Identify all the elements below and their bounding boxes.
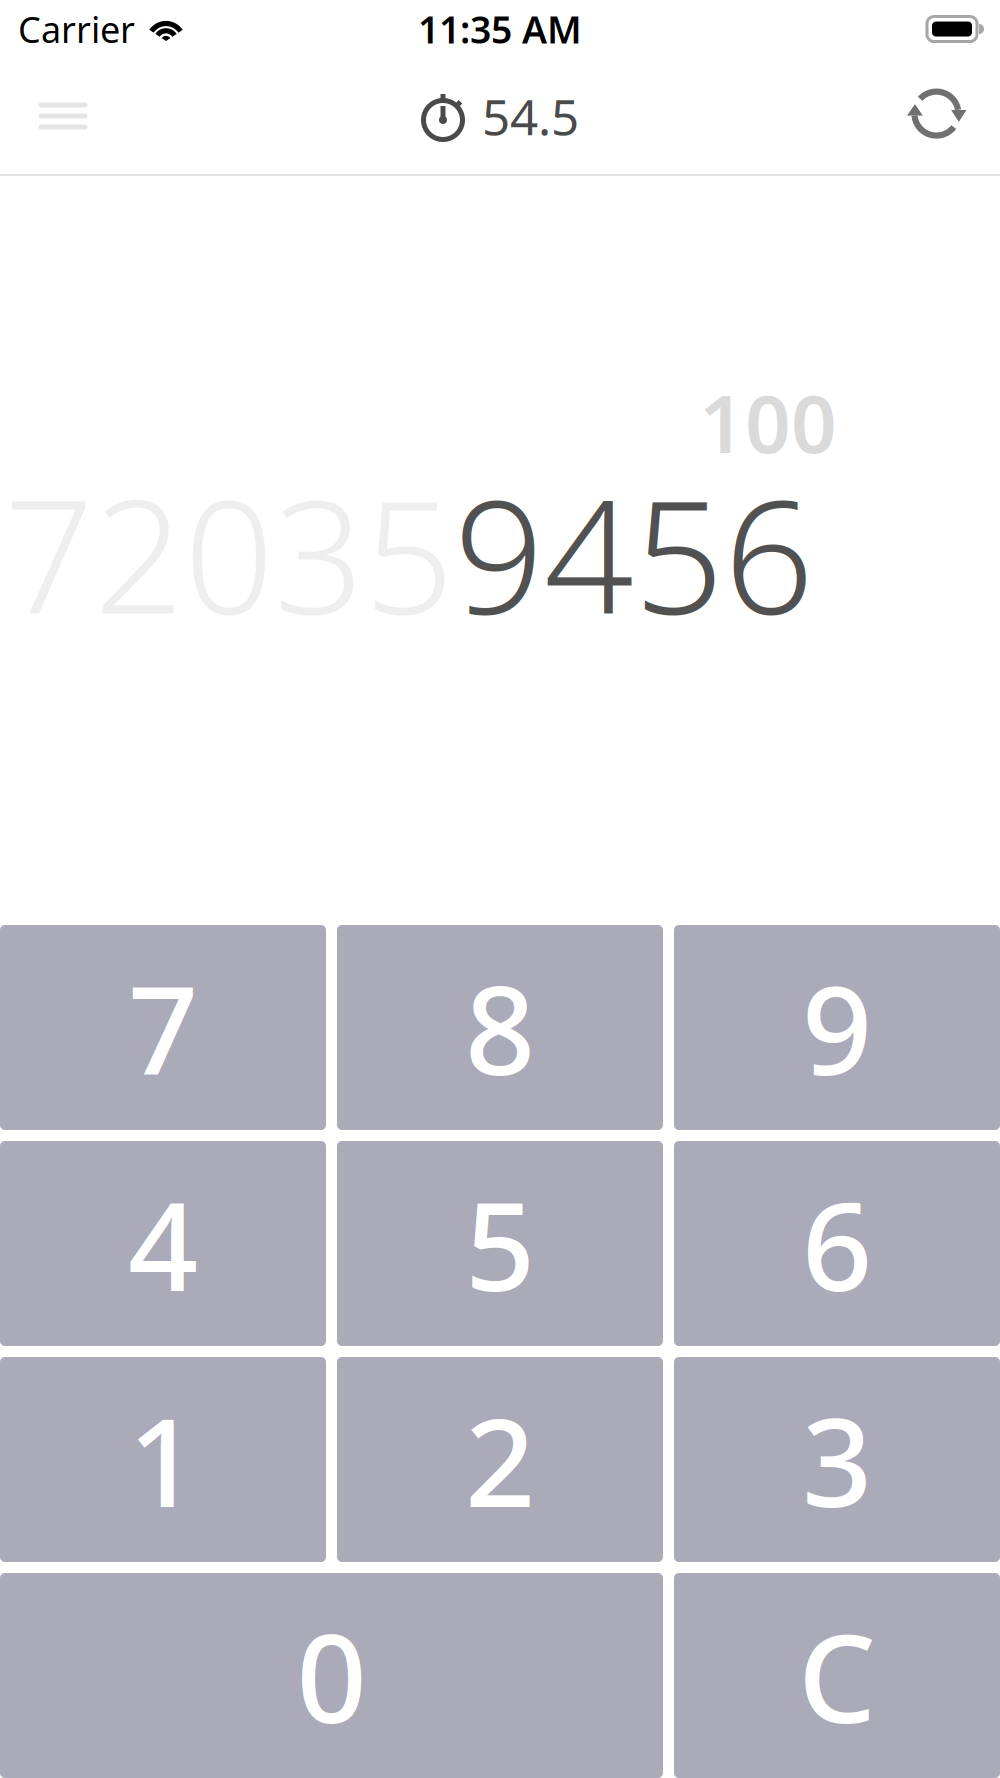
button[interactable]: 8 xyxy=(337,925,663,1130)
staticText: 9456 xyxy=(454,448,814,657)
button[interactable]: 2 xyxy=(337,1357,663,1562)
staticText: 54.5 xyxy=(482,83,579,149)
staticText: Carrier xyxy=(18,5,135,53)
staticText: 8 xyxy=(465,946,535,1109)
button[interactable]: 3 xyxy=(674,1357,1000,1562)
staticText: 3 xyxy=(802,1378,872,1541)
staticText: 100 xyxy=(699,369,837,475)
button[interactable]: C xyxy=(674,1573,1000,1778)
staticText: 7 xyxy=(128,946,198,1109)
button[interactable]: 6 xyxy=(674,1141,1000,1346)
button[interactable]: Menu xyxy=(8,58,118,174)
staticText: 5 xyxy=(465,1162,535,1325)
button[interactable]: 7 xyxy=(0,925,326,1130)
button[interactable]: 0 xyxy=(0,1573,663,1778)
staticText: 1 xyxy=(128,1378,198,1541)
button[interactable]: 9 xyxy=(674,925,1000,1130)
button[interactable]: 5 xyxy=(337,1141,663,1346)
staticText: 72035 xyxy=(4,448,454,657)
button[interactable]: 4 xyxy=(0,1141,326,1346)
button[interactable]: Restart xyxy=(882,58,992,174)
staticText: 0 xyxy=(296,1594,366,1757)
staticText: 6 xyxy=(802,1162,872,1325)
staticText: 2 xyxy=(465,1378,535,1541)
staticText: C xyxy=(798,1594,876,1757)
button[interactable]: 1 xyxy=(0,1357,326,1562)
staticText: 9 xyxy=(802,946,872,1109)
staticText: 11:35 AM xyxy=(418,4,582,54)
staticText: 4 xyxy=(128,1162,198,1325)
